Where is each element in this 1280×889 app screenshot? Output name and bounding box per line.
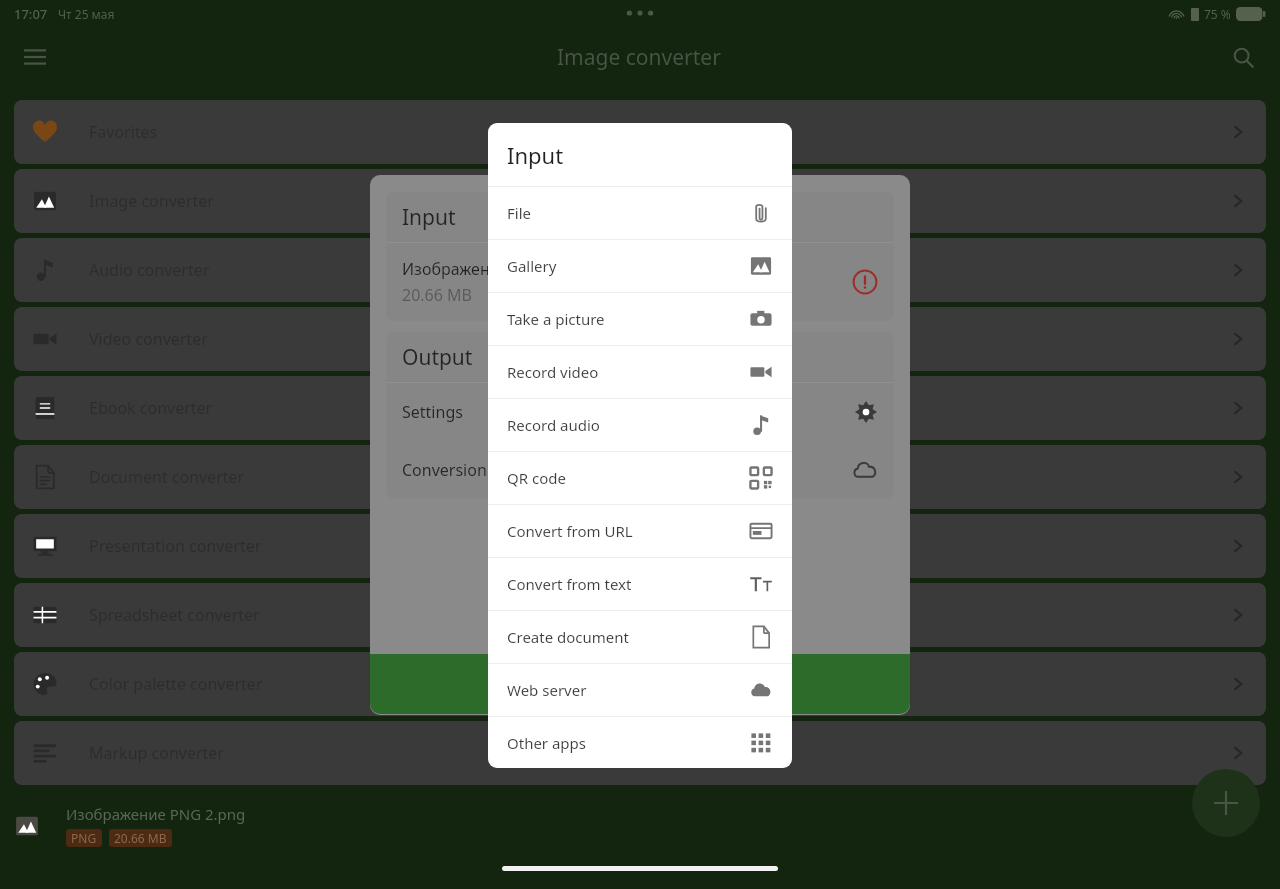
staticText: Take a picture [507, 309, 605, 329]
staticText: Изображение PNG 2.png [66, 804, 246, 824]
staticText: Image converter [89, 190, 214, 212]
staticText: Video converter [89, 328, 208, 350]
staticText: 75 % [1204, 6, 1231, 22]
staticText: Image converter [557, 43, 721, 72]
staticText: Record video [507, 362, 599, 382]
staticText: Spreadsheet converter [89, 604, 260, 626]
staticText: Color palette converter [89, 673, 263, 695]
staticText: Web server [507, 680, 587, 700]
staticText: Record audio [507, 415, 600, 435]
button[interactable]: Color palette converter [14, 652, 1266, 716]
button[interactable]: Search [1220, 34, 1266, 80]
button[interactable]: Other apps [488, 717, 792, 768]
button[interactable]: Record audio [488, 399, 792, 451]
staticText: QR code [507, 468, 566, 488]
staticText: Favorites [89, 121, 158, 143]
staticText: 20.66 MB [402, 284, 472, 306]
staticText: File [507, 203, 531, 223]
button[interactable]: Gallery [488, 240, 792, 292]
button[interactable]: Video converter [14, 307, 1266, 371]
button[interactable]: Изображение PNG 2.png [386, 243, 894, 321]
staticText: PNG [71, 830, 97, 846]
button[interactable]: Markup converter [14, 721, 1266, 785]
button[interactable]: Ebook converter [14, 376, 1266, 440]
button[interactable]: Spreadsheet converter [14, 583, 1266, 647]
staticText: Audio converter [89, 259, 210, 281]
button[interactable]: Изображение PNG 2.png [0, 793, 1280, 858]
button[interactable]: Audio converter [14, 238, 1266, 302]
staticText: Output [402, 343, 473, 372]
staticText: 20.66 MB [114, 830, 167, 846]
staticText: Изображение PNG 2.png [402, 258, 594, 280]
button[interactable]: File [488, 187, 792, 239]
button[interactable]: QR code [488, 452, 792, 504]
button[interactable]: Image converter [14, 169, 1266, 233]
button[interactable]: Settings [386, 383, 894, 441]
button[interactable]: Add [1192, 769, 1260, 837]
staticText: Markup converter [89, 742, 224, 764]
staticText: Other apps [507, 733, 587, 753]
staticText: Input [507, 140, 564, 170]
staticText: Input [402, 203, 456, 232]
staticText: Convert from text [507, 574, 632, 594]
staticText: Document converter [89, 466, 245, 488]
staticText: Чт 25 мая [58, 6, 115, 22]
button[interactable]: Document converter [14, 445, 1266, 509]
staticText: Convert from URL [507, 521, 633, 541]
button[interactable]: Favorites [14, 100, 1266, 164]
button[interactable]: Presentation converter [14, 514, 1266, 578]
button[interactable]: Record video [488, 346, 792, 398]
button[interactable]: Create document [488, 611, 792, 663]
button[interactable]: Menu [12, 34, 58, 80]
button[interactable] [370, 654, 910, 714]
staticText: Conversion [402, 459, 487, 481]
staticText: Ebook converter [89, 397, 213, 419]
button[interactable]: Take a picture [488, 293, 792, 345]
button[interactable]: Convert from URL [488, 505, 792, 557]
button[interactable]: Web server [488, 664, 792, 716]
staticText: Presentation converter [89, 535, 262, 557]
staticText: Create document [507, 627, 629, 647]
button[interactable]: Conversion [386, 441, 894, 499]
button[interactable]: Convert from text [488, 558, 792, 610]
staticText: Settings [402, 401, 463, 423]
staticText: 17:07 [14, 5, 48, 23]
staticText: Gallery [507, 256, 557, 276]
